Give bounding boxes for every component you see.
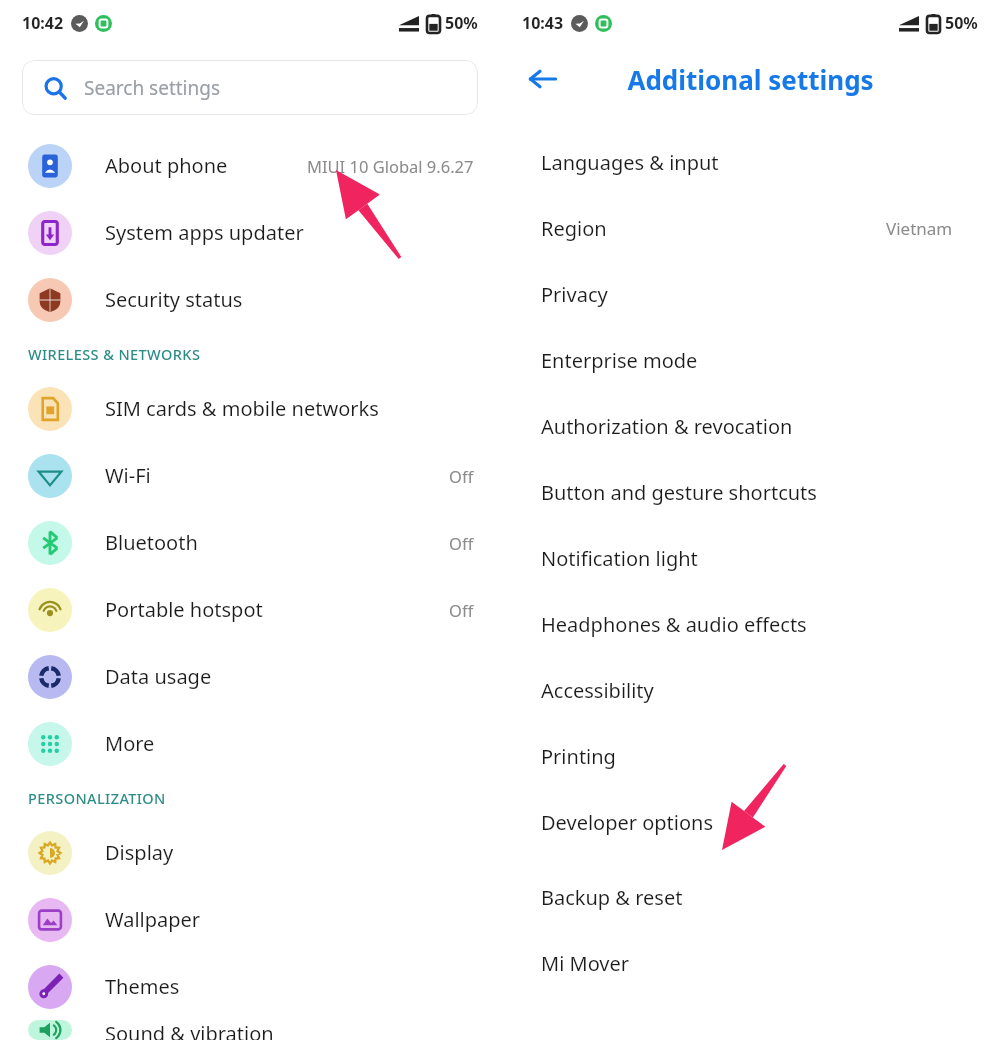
button[interactable]: Backup & reset — [500, 864, 1000, 930]
staticText: Off — [449, 532, 474, 554]
staticText: 10:43 — [522, 12, 564, 34]
staticText: About phone — [105, 152, 228, 179]
button[interactable]: Display — [0, 819, 500, 886]
staticText: Backup & reset — [541, 884, 683, 911]
button[interactable]: Printing — [500, 723, 1000, 789]
button[interactable]: Data usage — [0, 643, 500, 710]
button[interactable]: Back — [520, 56, 566, 102]
staticText: Wi-Fi — [105, 462, 151, 489]
staticText: Region — [541, 215, 607, 242]
button[interactable]: Sound & vibration — [0, 1020, 500, 1040]
staticText: Sound & vibration — [105, 1020, 274, 1040]
button[interactable]: SIM cards & mobile networks — [0, 375, 500, 442]
button[interactable]: Privacy — [500, 261, 1000, 327]
button[interactable]: Search settings — [22, 60, 478, 115]
button[interactable]: Portable hotspot — [0, 576, 500, 643]
staticText: Wallpaper — [105, 906, 201, 933]
staticText: Button and gesture shortcuts — [541, 479, 817, 506]
staticText: Authorization & revocation — [541, 413, 793, 440]
staticText: 10:42 — [22, 12, 64, 34]
staticText: Enterprise mode — [541, 347, 698, 374]
staticText: Accessibility — [541, 677, 654, 704]
staticText: 50% — [445, 12, 478, 34]
button[interactable]: System apps updater — [0, 199, 500, 266]
button[interactable]: More — [0, 710, 500, 777]
button[interactable]: Accessibility — [500, 657, 1000, 723]
staticText: More — [105, 730, 155, 757]
button[interactable]: About phone — [0, 132, 500, 199]
staticText: Themes — [105, 973, 180, 1000]
staticText: Printing — [541, 743, 616, 770]
staticText: Display — [105, 839, 174, 866]
button[interactable]: Headphones & audio effects — [500, 591, 1000, 657]
staticText: Bluetooth — [105, 529, 198, 556]
staticText: Portable hotspot — [105, 596, 263, 623]
button[interactable]: Developer options — [500, 789, 1000, 855]
button[interactable]: Button and gesture shortcuts — [500, 459, 1000, 525]
staticText: Additional settings — [627, 62, 874, 97]
button[interactable]: Enterprise mode — [500, 327, 1000, 393]
staticText: SIM cards & mobile networks — [105, 395, 379, 422]
staticText: 50% — [945, 12, 978, 34]
staticText: Vietnam — [886, 217, 953, 240]
staticText: System apps updater — [105, 219, 304, 246]
staticText: WIRELESS & NETWORKS — [28, 344, 201, 364]
button[interactable]: Themes — [0, 953, 500, 1020]
button[interactable]: Wallpaper — [0, 886, 500, 953]
staticText: Developer options — [541, 809, 714, 836]
staticText: Data usage — [105, 663, 212, 690]
staticText: PERSONALIZATION — [28, 788, 166, 808]
staticText: Headphones & audio effects — [541, 611, 807, 638]
button[interactable]: Bluetooth — [0, 509, 500, 576]
staticText: Security status — [105, 286, 243, 313]
button[interactable]: Region — [500, 195, 1000, 261]
button[interactable]: Wi-Fi — [0, 442, 500, 509]
staticText: Notification light — [541, 545, 698, 572]
staticText: Mi Mover — [541, 950, 630, 977]
staticText: Off — [449, 599, 474, 621]
staticText: MIUI 10 Global 9.6.27 — [307, 155, 474, 177]
button[interactable]: Authorization & revocation — [500, 393, 1000, 459]
staticText: Privacy — [541, 281, 608, 308]
button[interactable]: Security status — [0, 266, 500, 333]
button[interactable]: Languages & input — [500, 129, 1000, 195]
button[interactable]: Notification light — [500, 525, 1000, 591]
staticText: Off — [449, 465, 474, 487]
staticText: Languages & input — [541, 149, 719, 176]
button[interactable]: Mi Mover — [500, 930, 1000, 996]
staticText: Search settings — [84, 75, 221, 101]
